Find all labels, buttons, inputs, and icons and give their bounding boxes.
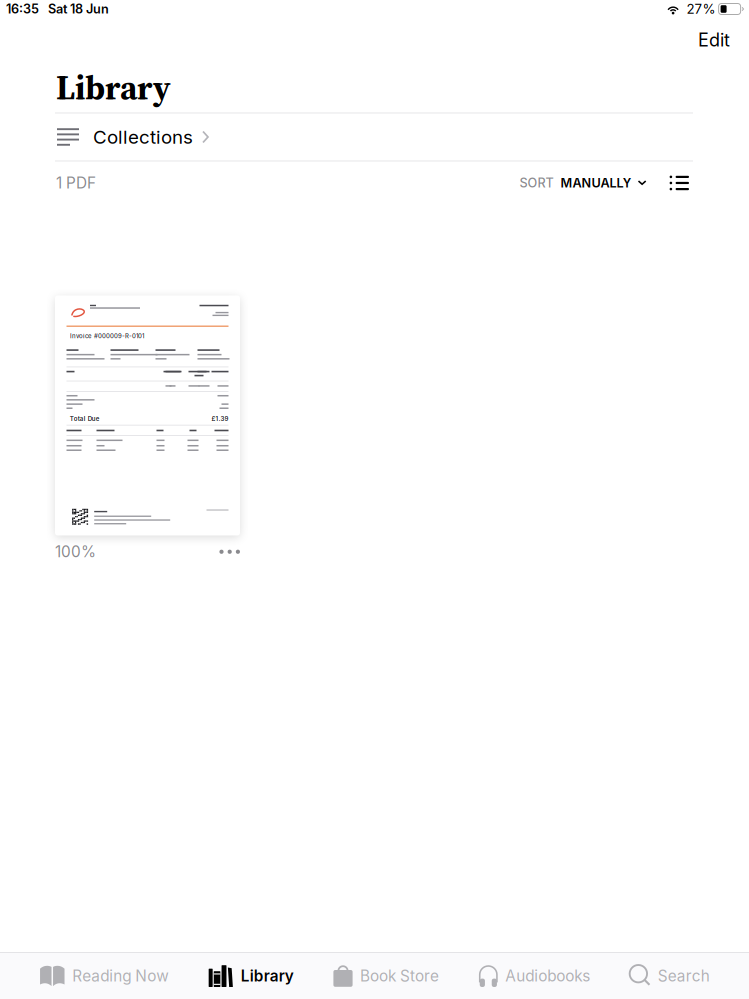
staticText: £1.39 (211, 415, 228, 422)
staticText: Audiobooks (505, 967, 590, 985)
button[interactable]: Audiobooks (478, 953, 590, 999)
staticText: Book Store (360, 967, 439, 985)
staticText: 27% (687, 1, 716, 17)
button[interactable]: Edit (688, 22, 740, 58)
staticText: Collections (93, 126, 193, 148)
button[interactable]: More options (219, 549, 240, 554)
staticText: Invoice #000009-R-0101 (70, 332, 144, 340)
button[interactable]: Invoice #000009-R-0101 (55, 295, 240, 535)
button[interactable]: Library (209, 953, 294, 999)
staticText: Edit (698, 29, 730, 51)
button[interactable]: SORT (520, 175, 647, 191)
button[interactable]: Book Store (333, 953, 439, 999)
button[interactable]: Search (630, 953, 710, 999)
staticText: SORT (520, 175, 554, 191)
staticText: 1 PDF (56, 174, 96, 192)
button[interactable]: List view (647, 176, 689, 190)
staticText: Total Due (70, 415, 100, 422)
staticText: 16:35 (6, 1, 39, 17)
staticText: MANUALLY (561, 175, 632, 191)
staticText: Sat 18 Jun (48, 1, 109, 17)
button[interactable]: Collections (0, 113, 749, 160)
staticText: 100% (55, 542, 96, 561)
staticText: Library (241, 967, 294, 985)
staticText: Reading Now (72, 967, 169, 985)
button[interactable]: Reading Now (39, 953, 169, 999)
staticText: Search (658, 967, 710, 985)
staticText: Library (56, 65, 171, 110)
